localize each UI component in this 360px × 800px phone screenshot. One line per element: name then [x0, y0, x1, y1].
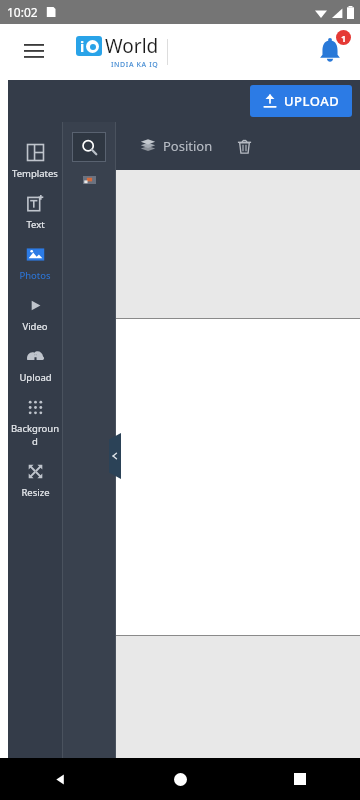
button[interactable]: Text	[8, 187, 62, 238]
staticText: Upload	[19, 371, 52, 384]
button[interactable]: Back	[0, 758, 120, 800]
staticText: Video	[22, 320, 48, 333]
staticText: Background	[8, 422, 62, 448]
button[interactable]: Photos	[8, 238, 62, 289]
staticText: 10:02	[7, 4, 38, 20]
button[interactable]: UPLOAD	[250, 85, 352, 117]
button[interactable]: Recents	[240, 758, 360, 800]
staticText: 1	[341, 32, 347, 44]
button[interactable]: Templates	[8, 136, 62, 187]
staticText: Text	[26, 218, 45, 231]
button[interactable]: Home	[120, 758, 240, 800]
staticText: World	[105, 33, 159, 59]
button[interactable]: Upload	[8, 340, 62, 391]
button[interactable]: Background	[8, 391, 62, 455]
staticText: Position	[163, 137, 213, 155]
button[interactable]: Notifications	[308, 29, 352, 73]
staticText: INDIA KA IQ	[111, 60, 159, 70]
button[interactable]: Delete	[229, 131, 259, 161]
button[interactable]: Search	[72, 132, 106, 162]
button[interactable]: Asset thumbnail	[83, 176, 96, 184]
button[interactable]	[116, 319, 360, 635]
staticText: Photos	[19, 269, 51, 282]
button[interactable]: Video	[8, 289, 62, 340]
button[interactable]: Position	[138, 133, 215, 159]
staticText: Templates	[12, 167, 58, 180]
button[interactable]: Resize	[8, 455, 62, 506]
staticText: Resize	[21, 486, 50, 499]
staticText: UPLOAD	[284, 92, 340, 110]
staticText: i	[80, 37, 85, 56]
button[interactable]: Menu	[12, 29, 56, 73]
button[interactable]: Collapse panel	[109, 433, 121, 479]
